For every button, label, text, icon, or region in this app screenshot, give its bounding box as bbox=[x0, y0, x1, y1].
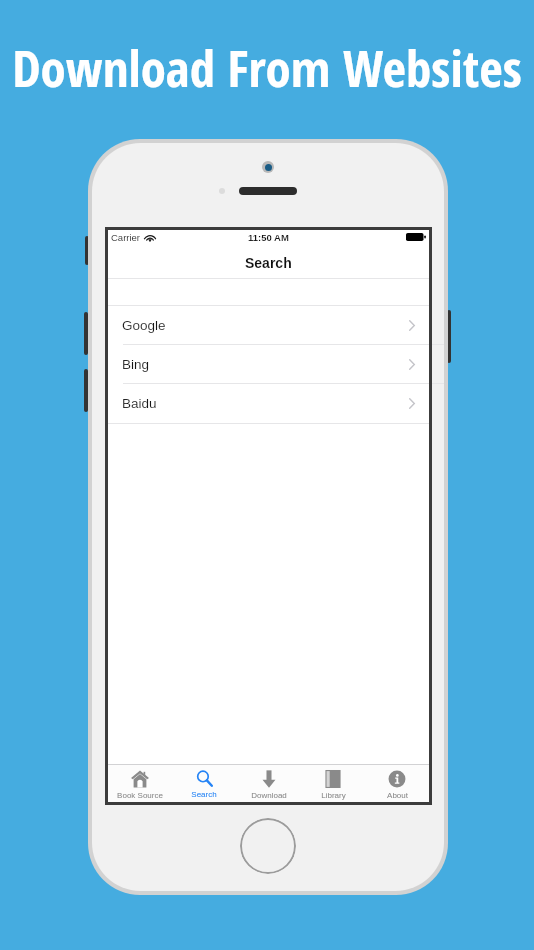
button[interactable]: Search bbox=[172, 765, 236, 802]
staticText: Google bbox=[122, 318, 166, 333]
staticText: Carrier bbox=[111, 232, 141, 243]
other: Book Source bbox=[131, 770, 149, 788]
button[interactable]: Library bbox=[301, 765, 365, 802]
other: Search bbox=[196, 770, 213, 787]
staticText: Download bbox=[251, 791, 287, 800]
staticText: About bbox=[387, 791, 408, 800]
staticText: Search bbox=[191, 790, 217, 799]
staticText: Bing bbox=[122, 357, 150, 372]
other: Library bbox=[324, 770, 342, 788]
button[interactable]: About bbox=[365, 765, 429, 802]
staticText: Library bbox=[321, 791, 346, 800]
staticText: Book Source bbox=[117, 791, 163, 800]
staticText: Search bbox=[245, 255, 292, 271]
staticText: Download From Websites bbox=[0, 32, 534, 101]
button[interactable]: Download bbox=[237, 765, 301, 802]
staticText: 11:50 AM bbox=[248, 232, 289, 243]
button[interactable]: Baidu bbox=[108, 384, 429, 423]
other: Download bbox=[260, 770, 278, 788]
staticText: Baidu bbox=[122, 396, 157, 411]
button[interactable]: Book Source bbox=[108, 765, 172, 802]
button[interactable]: Bing bbox=[108, 345, 429, 384]
other: About bbox=[388, 770, 406, 788]
button[interactable]: Google bbox=[108, 306, 429, 345]
